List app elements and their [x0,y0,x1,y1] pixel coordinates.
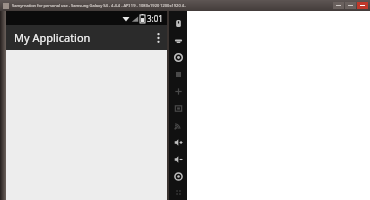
button[interactable]: Volume down [169,151,187,168]
button[interactable]: Window control [357,2,368,9]
button[interactable]: Back [169,100,187,117]
button[interactable]: More [169,185,187,200]
staticText: 3:01 [147,13,163,24]
button[interactable]: Volume up [169,134,187,151]
button[interactable]: Cast [169,117,187,134]
button[interactable]: Volume [169,32,187,49]
button[interactable]: More options [149,25,167,50]
button[interactable]: Zoom [169,83,187,100]
button[interactable]: Window control [333,2,344,9]
button[interactable]: Settings [169,168,187,185]
button[interactable]: Rotate [169,49,187,66]
staticText: My Application [14,30,91,45]
button[interactable]: Screenshot [169,66,187,83]
button[interactable]: Power [169,15,187,32]
button[interactable]: Window control [345,2,356,9]
staticText: 5amyrnation for personal use - Samsung G… [12,3,187,8]
